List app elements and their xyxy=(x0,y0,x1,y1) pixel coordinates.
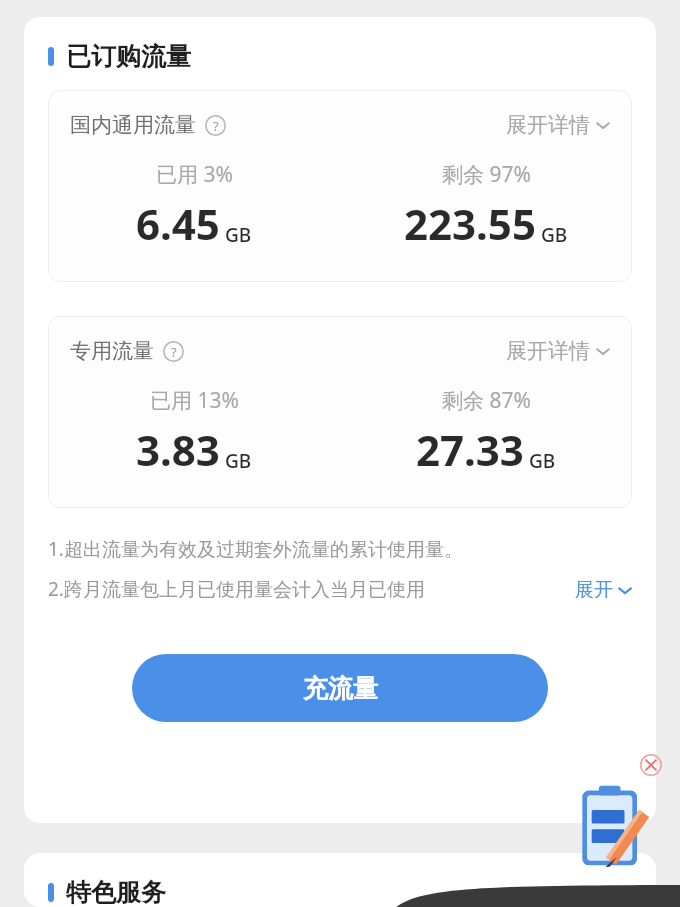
staticText: GB xyxy=(529,448,556,474)
staticText: 展开 xyxy=(575,578,613,602)
staticText: ? xyxy=(171,343,177,361)
button[interactable]: 充流量 xyxy=(132,654,548,722)
staticText: 专用流量 xyxy=(70,338,154,364)
staticText: GB xyxy=(541,222,568,248)
staticText: 2.跨月流量包上月已使用量会计入当月已使用 xyxy=(48,576,425,602)
button[interactable]: 展开详情 xyxy=(506,112,610,138)
staticText: 充流量 xyxy=(303,673,378,704)
staticText: GB xyxy=(225,222,252,248)
button[interactable]: 已订购流量 xyxy=(48,41,656,72)
staticText: 国内通用流量 xyxy=(70,112,196,138)
staticText: 已订购流量 xyxy=(66,41,191,72)
staticText: 展开详情 xyxy=(506,112,590,138)
button[interactable]: 展开详情 xyxy=(506,338,610,364)
staticText: 1.超出流量为有效及过期套外流量的累计使用量。 xyxy=(48,536,463,562)
staticText: 已用 13% xyxy=(150,386,239,415)
staticText: 已用 3% xyxy=(156,160,233,189)
staticText: 剩余 97% xyxy=(442,160,531,189)
staticText: 剩余 87% xyxy=(442,386,531,415)
button[interactable]: 国内通用流量 xyxy=(48,90,632,282)
button[interactable]: 关闭 xyxy=(640,754,662,776)
button[interactable]: 展开 xyxy=(575,578,632,602)
staticText: ? xyxy=(213,117,219,135)
button[interactable]: 意见反馈 xyxy=(578,780,650,868)
staticText: 223.55 xyxy=(404,195,536,252)
button[interactable]: 专用流量 xyxy=(48,316,632,508)
staticText: 27.33 xyxy=(416,421,524,478)
staticText: 特色服务 xyxy=(66,877,166,907)
button[interactable]: 特色服务 xyxy=(48,877,656,907)
staticText: 展开详情 xyxy=(506,338,590,364)
staticText: 3.83 xyxy=(136,421,220,478)
staticText: 6.45 xyxy=(136,195,220,252)
staticText: GB xyxy=(225,448,252,474)
